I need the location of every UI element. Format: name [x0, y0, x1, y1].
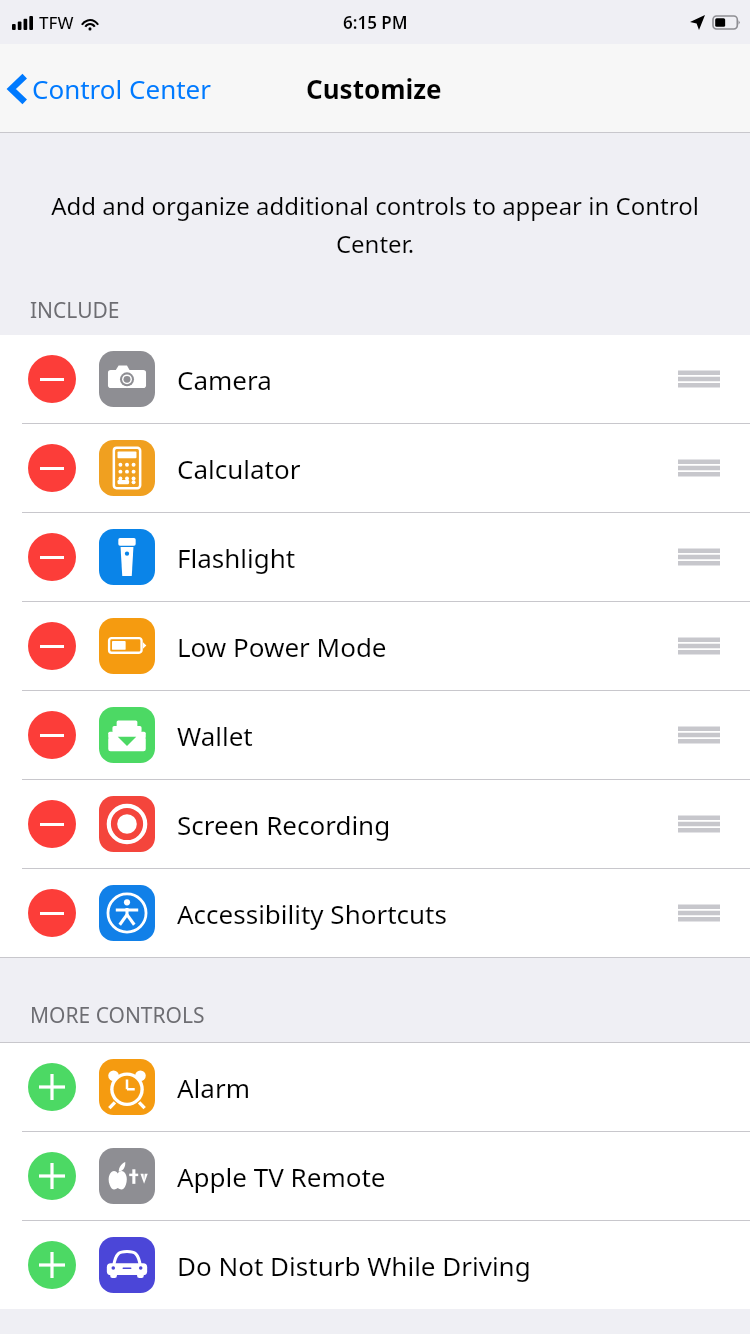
staticText: Screen Recording	[177, 807, 391, 842]
staticText: Control Center	[32, 71, 211, 106]
button[interactable]: Remove Flashlight	[28, 533, 76, 581]
button[interactable]: Add Do Not Disturb While Driving	[28, 1241, 76, 1289]
staticText: INCLUDE	[30, 296, 120, 325]
other: Reorder	[678, 366, 720, 392]
staticText: TFW	[39, 11, 74, 34]
staticText: Accessibility Shortcuts	[177, 896, 447, 931]
staticText: Add and organize additional controls to …	[28, 189, 722, 260]
staticText: Do Not Disturb While Driving	[177, 1248, 531, 1283]
button[interactable]: Remove Low Power Mode	[28, 622, 76, 670]
staticText: Low Power Mode	[177, 629, 387, 664]
staticText: 6:15 PM	[343, 11, 408, 34]
other: Reorder	[678, 455, 720, 481]
button[interactable]: Remove Screen Recording	[0, 780, 750, 868]
button[interactable]: Remove Wallet	[0, 691, 750, 779]
other: Reorder	[678, 900, 720, 926]
staticText: Alarm	[177, 1070, 250, 1105]
button[interactable]: Remove Camera	[28, 355, 76, 403]
staticText: Calculator	[177, 451, 301, 486]
other: Reorder	[678, 811, 720, 837]
staticText: Camera	[177, 362, 272, 397]
button[interactable]: Remove Calculator	[28, 444, 76, 492]
button[interactable]: Remove Wallet	[28, 711, 76, 759]
button[interactable]: Remove Screen Recording	[28, 800, 76, 848]
staticText: Customize	[306, 71, 442, 106]
button[interactable]: Add Apple TV Remote	[28, 1152, 76, 1200]
other: Reorder	[678, 633, 720, 659]
other: Reorder	[678, 544, 720, 570]
button[interactable]: Add Do Not Disturb While Driving	[0, 1221, 750, 1309]
other: Reorder	[678, 722, 720, 748]
button[interactable]: Remove Accessibility Shortcuts	[28, 889, 76, 937]
staticText: Wallet	[177, 718, 253, 753]
button[interactable]: Remove Low Power Mode	[0, 602, 750, 690]
button[interactable]: Remove Accessibility Shortcuts	[0, 869, 750, 957]
button[interactable]: Control Center	[10, 71, 211, 106]
button[interactable]: Add Alarm	[28, 1063, 76, 1111]
button[interactable]: Remove Flashlight	[0, 513, 750, 601]
staticText: MORE CONTROLS	[30, 1001, 205, 1030]
button[interactable]: Add Apple TV Remote	[0, 1132, 750, 1220]
button[interactable]: Remove Calculator	[0, 424, 750, 512]
button[interactable]: Remove Camera	[0, 335, 750, 423]
staticText: Apple TV Remote	[177, 1159, 386, 1194]
staticText: Flashlight	[177, 540, 296, 575]
button[interactable]: Add Alarm	[0, 1043, 750, 1131]
